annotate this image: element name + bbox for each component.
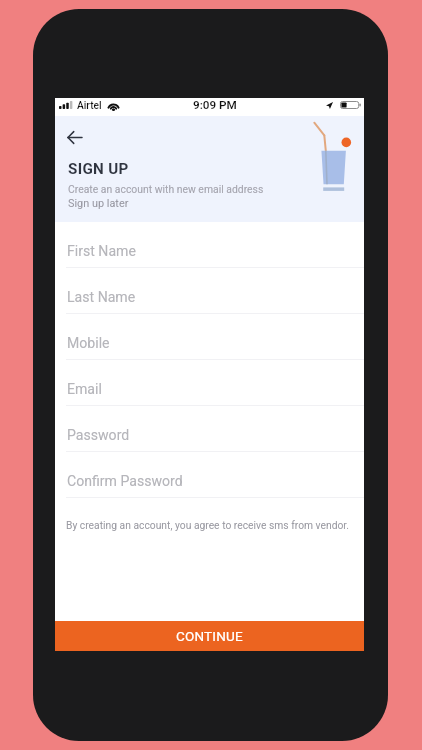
staticText: CONTINUE (176, 628, 243, 644)
button[interactable]: Password (55, 406, 364, 452)
button[interactable]: Mobile (55, 314, 364, 360)
staticText: By creating an account, you agree to rec… (66, 519, 349, 531)
staticText: Airtel (77, 100, 102, 112)
button[interactable]: Email (55, 360, 364, 406)
button[interactable]: Back (59, 122, 89, 152)
staticText: Create an account with new email address (68, 183, 264, 195)
button[interactable]: First Name (55, 222, 364, 268)
staticText: 9:09 PM (193, 98, 237, 112)
staticText: First Name (67, 243, 136, 260)
staticText: SIGN UP (68, 160, 129, 178)
staticText: Last Name (67, 289, 136, 306)
staticText: Sign up later (68, 197, 129, 210)
staticText: Confirm Password (67, 473, 183, 490)
staticText: Password (67, 427, 130, 444)
button[interactable]: Confirm Password (55, 452, 364, 498)
button[interactable]: CONTINUE (55, 621, 364, 651)
button[interactable]: Last Name (55, 268, 364, 314)
staticText: Mobile (67, 335, 110, 352)
staticText: Email (67, 381, 102, 398)
button[interactable]: Sign up later (68, 197, 129, 210)
